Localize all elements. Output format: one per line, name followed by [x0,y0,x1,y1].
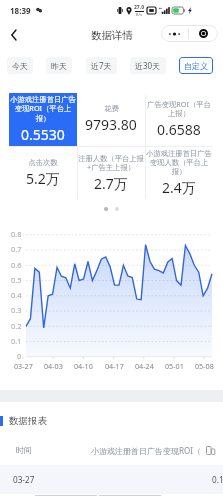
staticText: 0.4 [11,290,22,300]
button[interactable]: Sort [206,446,215,455]
staticText: 0.2 [11,321,22,331]
staticText: 04-03 [44,361,63,371]
staticText: 0.8 [11,229,22,239]
staticText: 近7天 [91,60,112,71]
button[interactable]: Back [1,23,25,47]
staticText: 2.4万 [162,178,196,197]
button[interactable]: 花费 [77,93,145,146]
staticText: 2.7万 [94,174,128,193]
staticText: 0 [17,351,22,361]
staticText: 小游戏注册首日广告 变现人数（平台上 报） [146,149,212,176]
button[interactable]: 小游戏注册首日广告 变现人数（平台上 报） [145,147,213,200]
staticText: 花费 [104,104,119,113]
staticText: 04-24 [135,361,154,371]
staticText: 03-27 [14,361,33,371]
staticText: 04-17 [105,361,124,371]
button[interactable]: 今天 [7,57,33,74]
staticText: 0.6588 [157,120,201,139]
staticText: 5.2万 [26,169,60,188]
staticText: 03-27 [13,474,35,485]
button[interactable]: 近7天 [86,57,117,74]
staticText: 0.1 [11,336,22,346]
button[interactable]: 小游戏注册首日广告 变现ROI（平台上 报） [9,93,77,146]
staticText: 0.5 [11,275,22,285]
staticText: 05-01 [165,361,184,371]
staticText: 0.5530 [21,125,65,144]
button[interactable]: 昨天 [46,57,72,74]
staticText: 27.0 [134,4,144,11]
staticText: 小游戏注册首日广告 变现ROI（平台上 报） [10,95,76,123]
button[interactable]: Close [189,25,218,42]
button[interactable]: 自定义 [179,57,213,74]
staticText: 数据报表 [9,415,47,426]
staticText: 点击次数 [28,158,58,167]
staticText: 0.3 [11,305,22,315]
staticText: 0.6 [11,260,22,270]
staticText: 今天 [12,61,28,71]
staticText: K/s [136,12,142,17]
staticText: 0.7 [11,244,22,254]
staticText: 昨天 [51,61,67,71]
staticText: 0.1 [212,474,223,485]
button[interactable]: More options [161,25,188,42]
button[interactable]: 广告变现ROI（平台 上报） [145,93,213,146]
staticText: 小游戏注册首日广告变现ROI（ [91,445,201,456]
staticText: 广告变现ROI（平台 上报） [147,99,211,118]
staticText: 数据详情 [91,29,133,42]
staticText: 时间 [16,445,32,455]
staticText: 18:39 [10,5,31,16]
staticText: 自定义 [184,61,208,71]
staticText: 近30天 [135,60,161,71]
staticText: 注册人数（平台上报 +广告主上报） [78,154,144,172]
staticText: 05-08 [195,361,214,371]
staticText: 04-10 [74,361,93,371]
button[interactable]: 注册人数（平台上报 +广告主上报） [77,147,145,200]
button[interactable]: 点击次数 [9,147,77,200]
staticText: 9793.80 [85,115,137,134]
button[interactable]: 近30天 [130,57,166,74]
